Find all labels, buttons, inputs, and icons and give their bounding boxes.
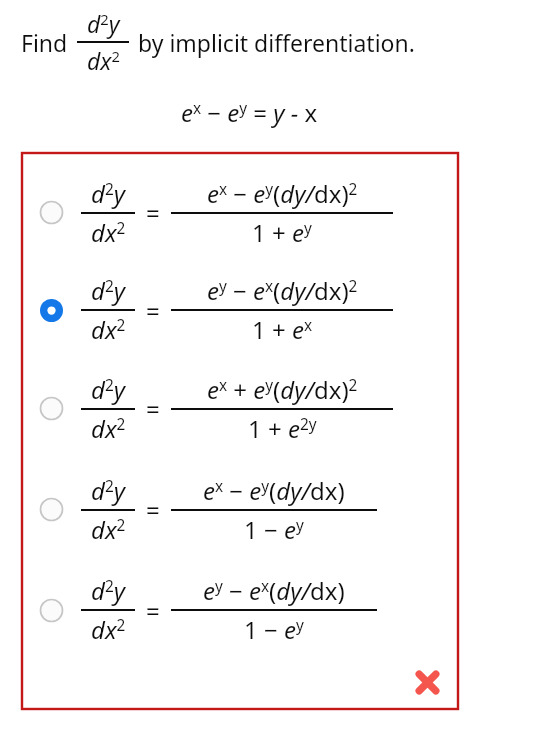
staticText: =: [146, 294, 160, 327]
staticText: ex − ey(dy/dx)2: [207, 177, 358, 210]
staticText: ey − ex(dy/dx)2: [207, 274, 358, 307]
staticText: 1 + ey: [252, 216, 312, 249]
staticText: dx2: [87, 45, 120, 76]
staticText: d2y: [91, 474, 125, 507]
staticText: ex − ey(dy/dx): [203, 474, 345, 507]
staticText: Find: [21, 27, 68, 58]
staticText: dx2: [91, 513, 126, 546]
staticText: 1 − ey: [244, 513, 304, 546]
button[interactable]: d2y: [22, 358, 458, 459]
button[interactable]: Incorrect answer: [414, 669, 441, 696]
button[interactable]: d2y: [22, 459, 458, 560]
staticText: d2y: [91, 574, 125, 607]
staticText: =: [146, 196, 160, 229]
staticText: ex − ey = y − x: [181, 96, 318, 129]
staticText: =: [146, 392, 160, 425]
staticText: d2y: [91, 373, 125, 406]
staticText: d2y: [91, 177, 125, 210]
staticText: dx2: [91, 412, 126, 445]
staticText: by implicit differentiation.: [138, 27, 415, 58]
staticText: d2y: [91, 274, 125, 307]
staticText: =: [146, 594, 160, 627]
staticText: dx2: [91, 613, 126, 646]
staticText: 1 − ey: [244, 613, 304, 646]
staticText: dx2: [91, 216, 126, 249]
button[interactable]: d2y: [22, 163, 458, 262]
button[interactable]: d2y: [22, 560, 458, 660]
staticText: ey − ex(dy/dx): [203, 574, 345, 607]
staticText: 1 + e2y: [248, 412, 317, 445]
staticText: ex + ey(dy/dx)2: [207, 373, 358, 406]
staticText: =: [146, 493, 160, 526]
staticText: 1 + ex: [252, 313, 313, 346]
button[interactable]: d2y: [22, 262, 458, 358]
staticText: d2y: [87, 8, 120, 39]
staticText: dx2: [91, 313, 126, 346]
